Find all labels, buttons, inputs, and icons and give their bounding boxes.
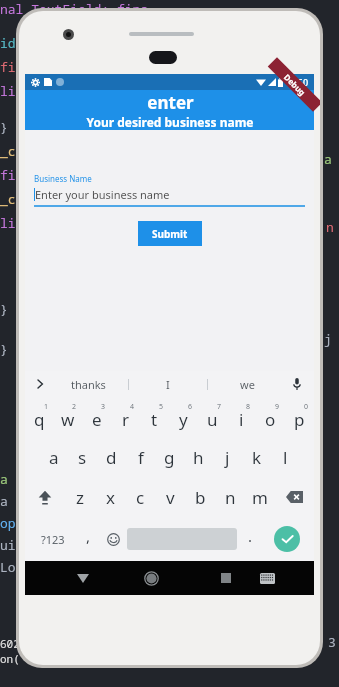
button[interactable]: thanks [49,371,128,397]
button[interactable]: y [169,397,198,437]
staticText: z [76,486,84,509]
staticText: ?123 [41,532,65,547]
staticText: enter [147,91,194,114]
staticText: 0 [304,402,309,412]
staticText: k [252,446,262,469]
button[interactable]: a [39,437,68,477]
button[interactable]: b [185,477,215,517]
staticText: we [240,377,255,392]
staticText: x [106,486,115,509]
button[interactable]: z [65,477,95,517]
staticText: j [324,330,332,348]
staticText: Submit [152,227,188,241]
staticText: I [166,377,170,392]
staticText: Your desired business name [86,114,254,130]
staticText: s [78,446,87,469]
staticText: Debug [282,71,308,98]
staticText: 6 [188,402,193,412]
staticText: p [294,408,305,431]
staticText: Enter your business name [35,187,170,202]
button[interactable]: h [184,437,213,477]
button[interactable]: l [271,437,300,477]
button[interactable]: Recents [208,561,244,595]
button[interactable]: Voice input [286,371,308,397]
staticText: q [34,408,45,431]
button[interactable]: Switch keyboard [249,561,285,595]
staticText: 5 [159,402,164,412]
staticText: thanks [71,377,106,392]
button[interactable]: p [285,397,314,437]
staticText: v [166,486,175,509]
staticText: on( 6028): eglMakeCurrent: 0xee62c2e0: v… [0,651,291,666]
button[interactable]: o [256,397,285,437]
staticText: a [0,492,8,510]
staticText: . [248,526,253,546]
button[interactable]: f [126,437,155,477]
button[interactable]: t [140,397,169,437]
staticText: i [239,408,244,431]
button[interactable]: r [111,397,140,437]
button[interactable]: k [242,437,271,477]
button[interactable]: , [76,517,100,561]
staticText: f [138,446,144,469]
staticText: 2 [72,402,77,412]
staticText: m [252,486,268,509]
staticText: fi [0,58,16,76]
staticText: _c [0,142,16,160]
staticText: 9 [275,402,280,412]
button[interactable]: s [68,437,97,477]
button[interactable]: q [25,397,53,437]
button[interactable]: we [208,371,286,397]
button[interactable]: More suggestions [31,371,49,397]
staticText: n [225,486,236,509]
button[interactable]: Home [133,561,169,595]
staticText: a [0,470,8,488]
staticText: j [225,446,230,469]
button[interactable]: c [125,477,155,517]
staticText: b [195,486,206,509]
button[interactable]: d [97,437,126,477]
button[interactable]: n [215,477,245,517]
staticText: 8 [246,402,251,412]
button[interactable]: w [53,397,82,437]
staticText: c [136,486,145,509]
staticText: a [49,446,59,469]
button[interactable]: Enter [264,517,310,561]
staticText: y [179,408,188,431]
staticText: _c [0,190,16,208]
button[interactable]: I [129,371,207,397]
button[interactable]: Emoji [100,517,127,561]
button[interactable]: Submit [138,221,202,246]
staticText: 6028): HostConnection::get() New Host Co… [0,636,304,651]
staticText: g [164,446,175,469]
staticText: fi [0,166,16,184]
button[interactable]: Backspace [275,477,314,517]
staticText: w [61,408,75,431]
button[interactable]: Enter your business name [34,186,305,202]
button[interactable]: . [237,517,264,561]
staticText: u [207,408,218,431]
staticText: } [0,300,8,318]
staticText: a [324,150,332,168]
staticText: Business Name [34,173,92,184]
staticText: ui [0,536,16,554]
staticText: 3 [328,633,336,651]
button[interactable]: x [95,477,125,517]
button[interactable]: v [155,477,185,517]
button[interactable]: Shift [25,477,65,517]
button[interactable]: i [227,397,256,437]
staticText: li [0,82,16,100]
button[interactable]: u [198,397,227,437]
button[interactable]: Hide keyboard [65,561,101,595]
button[interactable]: j [213,437,242,477]
staticText: 4 [130,402,135,412]
button[interactable]: ?123 [29,517,76,561]
button[interactable]: m [245,477,275,517]
staticText: n [326,218,334,236]
button[interactable]: e [82,397,111,437]
staticText: t [151,408,158,431]
staticText: } [0,118,8,136]
staticText: r [122,408,130,431]
button[interactable]: g [155,437,184,477]
